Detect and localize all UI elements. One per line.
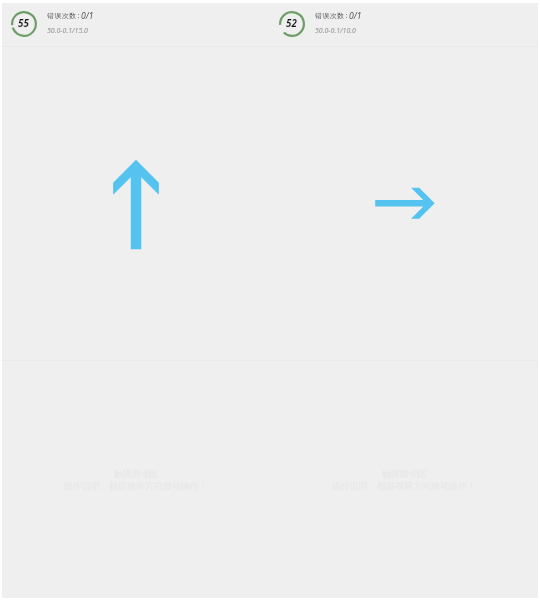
staticText: 0/1 — [81, 10, 94, 22]
staticText: 错误次数 — [315, 11, 345, 20]
staticText: 55 — [18, 17, 29, 30]
staticText: 50.0-0.1/10.0 — [315, 26, 356, 36]
staticText: ： — [343, 11, 350, 20]
staticText: 50.0-0.1/15.0 — [47, 26, 88, 36]
staticText: 52 — [286, 17, 297, 30]
staticText: 错误次数 — [47, 11, 77, 20]
staticText: 0/1 — [349, 10, 362, 22]
staticText: ： — [75, 11, 82, 20]
